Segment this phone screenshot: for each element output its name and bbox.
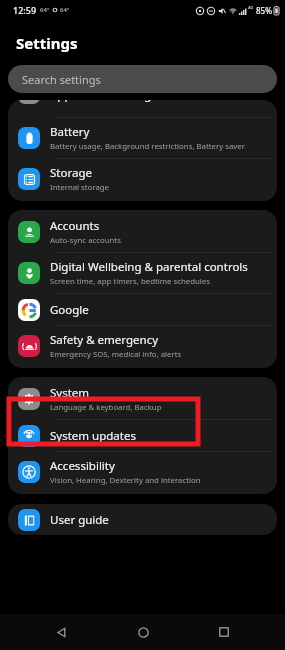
staticText: Vision, Hearing, Dexterity and interacti…: [50, 475, 201, 486]
button[interactable]: Safety & emergency: [8, 326, 277, 366]
staticText: Screen time, app timers, bedtime schedul…: [50, 276, 210, 287]
staticText: Google: [50, 302, 89, 318]
button[interactable]: Back: [41, 614, 81, 650]
staticText: 12:59: [13, 4, 37, 16]
staticText: Accounts: [50, 218, 100, 234]
button[interactable]: Accounts: [8, 212, 277, 252]
button[interactable]: User guide: [8, 504, 277, 535]
staticText: Application manager: [50, 100, 163, 103]
staticText: Internal storage: [50, 182, 110, 193]
button[interactable]: Home: [123, 614, 163, 650]
staticText: Auto-sync accounts: [50, 235, 121, 246]
staticText: Battery: [50, 124, 90, 140]
button[interactable]: System updates: [8, 420, 277, 451]
staticText: System: [50, 385, 90, 401]
staticText: Digital Wellbeing & parental controls: [50, 259, 248, 275]
staticText: Storage: [50, 165, 92, 181]
button[interactable]: Battery: [8, 118, 277, 158]
staticText: 85%: [256, 5, 272, 16]
button[interactable]: Storage: [8, 159, 277, 199]
staticText: Safety & emergency: [50, 332, 159, 348]
staticText: System updates: [50, 428, 136, 444]
staticText: Emergency SOS, medical info, alerts: [50, 349, 182, 360]
button[interactable]: Recent apps: [204, 614, 244, 650]
staticText: 64°: [40, 6, 50, 14]
button[interactable]: Accessibility: [8, 452, 277, 492]
button[interactable]: Google: [8, 294, 277, 325]
button[interactable]: Application manager: [8, 100, 277, 117]
staticText: Settings: [16, 33, 78, 53]
staticText: User guide: [50, 512, 109, 528]
button[interactable]: Digital Wellbeing & parental controls: [8, 253, 277, 293]
button[interactable]: System: [8, 379, 277, 419]
button[interactable]: Search settings: [8, 65, 277, 93]
staticText: 64°: [60, 6, 70, 14]
staticText: Accessibility: [50, 458, 115, 474]
staticText: Language & keyboard, Backup: [50, 402, 162, 413]
staticText: Battery usage, Background restrictions, …: [50, 141, 245, 152]
staticText: Search settings: [22, 72, 101, 87]
staticText: 4G: [248, 5, 254, 10]
